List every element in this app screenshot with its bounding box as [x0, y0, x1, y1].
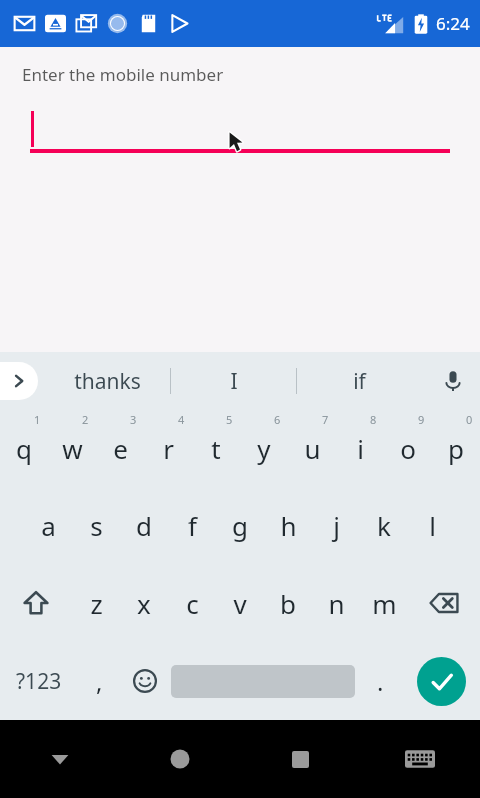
staticText: 5 — [226, 412, 233, 427]
staticText: 0 — [466, 412, 473, 427]
button[interactable]: f — [168, 487, 216, 564]
button[interactable]: o — [384, 410, 432, 487]
staticText: u — [304, 431, 321, 466]
staticText: thanks — [74, 367, 141, 396]
button[interactable]: s — [72, 487, 120, 564]
staticText: l — [429, 508, 436, 543]
button[interactable]: Expand toolbar — [0, 362, 38, 400]
staticText: , — [96, 665, 103, 698]
button[interactable]: c — [168, 564, 216, 642]
staticText: k — [377, 508, 391, 543]
button[interactable]: y — [240, 410, 288, 487]
staticText: r — [163, 431, 174, 466]
button[interactable]: Recents — [240, 720, 360, 798]
staticText: g — [232, 508, 248, 543]
staticText: 7 — [322, 412, 329, 427]
staticText: t — [211, 431, 221, 466]
staticText: a — [41, 508, 56, 543]
staticText: 6:24 — [436, 12, 470, 35]
staticText: . — [377, 665, 384, 698]
staticText: z — [90, 586, 103, 621]
button[interactable]: j — [312, 487, 360, 564]
button[interactable]: . — [358, 642, 403, 720]
staticText: o — [400, 431, 416, 466]
button[interactable]: n — [312, 564, 360, 642]
staticText: I — [230, 367, 238, 396]
staticText: h — [280, 508, 297, 543]
staticText: m — [372, 586, 397, 621]
staticText: if — [353, 367, 366, 396]
button[interactable]: t — [192, 410, 240, 487]
staticText: 8 — [370, 412, 377, 427]
button[interactable]: Home — [120, 720, 240, 798]
button[interactable]: v — [216, 564, 264, 642]
button[interactable]: ?123 — [0, 642, 78, 720]
button[interactable]: i — [336, 410, 384, 487]
button[interactable]: Voice input — [426, 352, 480, 410]
button[interactable]: l — [408, 487, 456, 564]
staticText: q — [16, 431, 32, 466]
button[interactable]: r — [144, 410, 192, 487]
staticText: v — [233, 586, 247, 621]
button[interactable]: p — [432, 410, 480, 487]
staticText: i — [357, 431, 364, 466]
staticText: e — [113, 431, 128, 466]
staticText: Enter the mobile number — [22, 63, 224, 86]
staticText: w — [62, 431, 83, 466]
button[interactable]: b — [264, 564, 312, 642]
button[interactable]: g — [216, 487, 264, 564]
button[interactable]: x — [120, 564, 168, 642]
staticText: d — [136, 508, 152, 543]
button[interactable]: a — [24, 487, 72, 564]
staticText: 1 — [34, 412, 41, 427]
button[interactable]: if — [297, 352, 422, 410]
staticText: c — [186, 586, 199, 621]
staticText: j — [333, 508, 340, 543]
staticText: 3 — [130, 412, 137, 427]
button[interactable]: I — [171, 352, 296, 410]
staticText: 4 — [178, 412, 185, 427]
button[interactable]: u — [288, 410, 336, 487]
button[interactable]: z — [72, 564, 120, 642]
staticText: 6 — [274, 412, 281, 427]
button[interactable]: Emoji — [121, 642, 168, 720]
button[interactable]: d — [120, 487, 168, 564]
button[interactable]: q — [0, 410, 48, 487]
staticText: y — [257, 431, 271, 466]
button[interactable]: Space — [168, 642, 358, 720]
button[interactable]: k — [360, 487, 408, 564]
button[interactable]: Done — [403, 642, 480, 720]
button[interactable]: thanks — [44, 352, 170, 410]
button[interactable]: Shift — [0, 564, 72, 642]
staticText: x — [137, 586, 151, 621]
button[interactable]: m — [360, 564, 408, 642]
button[interactable]: Backspace — [408, 564, 480, 642]
button[interactable]: , — [78, 642, 121, 720]
button[interactable]: h — [264, 487, 312, 564]
button[interactable] — [30, 109, 450, 153]
staticText: p — [448, 431, 464, 466]
button[interactable]: Switch keyboard — [360, 720, 480, 798]
staticText: 9 — [418, 412, 425, 427]
button[interactable]: Hide keyboard — [0, 720, 120, 798]
button[interactable]: w — [48, 410, 96, 487]
button[interactable]: e — [96, 410, 144, 487]
staticText: 2 — [82, 412, 89, 427]
staticText: s — [90, 508, 103, 543]
staticText: ?123 — [16, 667, 62, 696]
staticText: f — [188, 508, 197, 543]
staticText: b — [280, 586, 296, 621]
staticText: n — [328, 586, 345, 621]
